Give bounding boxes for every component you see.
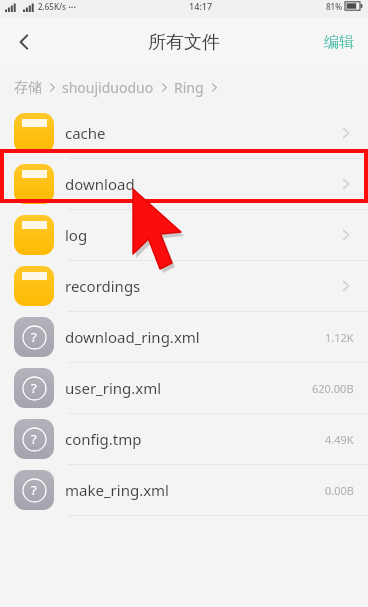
button[interactable]: download [0, 159, 368, 209]
button[interactable]: Ring [174, 78, 204, 97]
button[interactable]: log [0, 210, 368, 260]
staticText: 620.00B [312, 381, 354, 396]
staticText: 所有文件 [148, 31, 220, 54]
button[interactable]: recordings [0, 261, 368, 311]
staticText: 14:17 [189, 0, 213, 12]
staticText: 81% [326, 1, 342, 12]
staticText: Ring [174, 78, 204, 97]
button[interactable]: ? [0, 414, 368, 464]
staticText: download_ring.xml [65, 327, 200, 347]
staticText: make_ring.xml [65, 480, 169, 500]
staticText: 编辑 [324, 33, 354, 52]
staticText: 0.00B [325, 483, 354, 498]
staticText: download [65, 174, 135, 194]
button[interactable]: Back [0, 18, 48, 66]
staticText: 4.49K [325, 432, 354, 447]
button[interactable]: cache [0, 108, 368, 158]
staticText: user_ring.xml [65, 378, 162, 398]
staticText: cache [65, 123, 106, 143]
staticText: ? [31, 379, 37, 397]
staticText: log [65, 225, 88, 245]
staticText: ? [31, 481, 37, 499]
staticText: 2.65K/s [38, 1, 66, 12]
button[interactable]: 编辑 [310, 18, 368, 66]
button[interactable]: 存储 [14, 79, 42, 97]
staticText: recordings [65, 276, 141, 296]
staticText: 存储 [14, 79, 42, 97]
staticText: 1.12K [325, 330, 354, 345]
staticText: ? [31, 328, 37, 346]
button[interactable]: ? [0, 465, 368, 515]
button[interactable]: ? [0, 363, 368, 413]
staticText: shoujiduoduo [62, 78, 154, 97]
button[interactable]: ? [0, 312, 368, 362]
staticText: ··· [66, 0, 76, 12]
staticText: ? [31, 430, 37, 448]
staticText: config.tmp [65, 429, 142, 449]
button[interactable]: shoujiduoduo [62, 78, 154, 97]
